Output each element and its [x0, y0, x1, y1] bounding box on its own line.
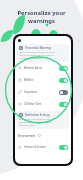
staticText: Notification Settings [25, 113, 50, 117]
button[interactable]: Vegetation [15, 86, 71, 98]
button[interactable]: UV/Solar Flare [15, 98, 71, 110]
button[interactable]: Weather Alerts [15, 62, 71, 74]
staticText: Weather Alerts [24, 66, 43, 70]
button[interactable]: Environment [15, 132, 71, 139]
staticText: Wildfire [24, 78, 34, 82]
staticText: Volcano & Seismic [24, 145, 47, 149]
staticText: Environment [18, 134, 36, 138]
staticText: What types of alerts do you want to rece… [19, 118, 54, 127]
staticText: What is most important to you when you a… [19, 51, 55, 60]
button[interactable]: Volcano & Seismic [15, 141, 71, 153]
button[interactable]: Wildfire [15, 74, 71, 86]
staticText: Personalize your warnings [17, 9, 66, 25]
staticText: Vegetation [24, 90, 38, 94]
staticText: Personalize Warnings [25, 46, 52, 50]
staticText: UV/Solar Flare [24, 102, 42, 106]
